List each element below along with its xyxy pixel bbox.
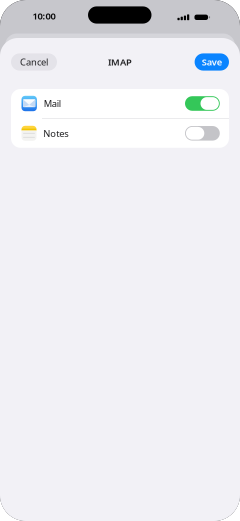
button[interactable]: Mail (11, 89, 229, 118)
staticText: IMAP (108, 56, 132, 68)
button[interactable]: Save (195, 53, 229, 71)
staticText: Save (202, 56, 222, 68)
button[interactable]: Notes (11, 119, 229, 148)
staticText: 10:00 (32, 10, 55, 22)
button[interactable]: Cancel (11, 53, 57, 71)
staticText: Notes (43, 127, 68, 139)
staticText: Cancel (20, 56, 48, 68)
staticText: Mail (44, 97, 61, 110)
